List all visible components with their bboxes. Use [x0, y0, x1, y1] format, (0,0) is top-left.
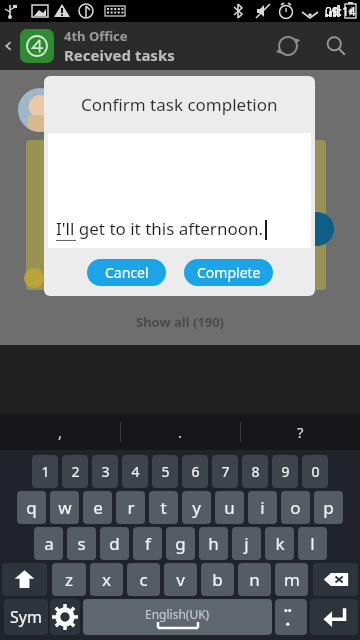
staticText: 09:14: [325, 3, 356, 19]
staticText: w: [58, 496, 72, 519]
staticText: y: [192, 496, 201, 519]
button[interactable]: n: [238, 563, 271, 596]
button[interactable]: 2: [62, 455, 88, 488]
staticText: Sym: [10, 606, 42, 628]
button[interactable]: 9: [272, 455, 298, 488]
staticText: Received tasks: [64, 45, 175, 65]
staticText: z: [65, 568, 73, 591]
staticText: b: [212, 568, 223, 591]
staticText: Show all (190): [136, 313, 225, 331]
button[interactable]: 0: [302, 455, 328, 488]
button[interactable]: v: [164, 563, 197, 596]
button[interactable]: Sym: [4, 599, 48, 635]
staticText: I'll get to it this afternoon.: [56, 217, 264, 240]
staticText: .: [178, 422, 183, 442]
button[interactable]: Enter: [310, 599, 358, 635]
staticText: 6: [191, 462, 200, 481]
staticText: r: [127, 496, 135, 519]
staticText: 1: [41, 462, 50, 481]
button[interactable]: h: [199, 527, 228, 560]
button[interactable]: 3: [92, 455, 118, 488]
button[interactable]: Refresh: [264, 22, 312, 70]
button[interactable]: English(UK): [83, 599, 272, 635]
button[interactable]: 7: [212, 455, 238, 488]
button[interactable]: b: [201, 563, 234, 596]
staticText: m: [284, 568, 300, 591]
staticText: j: [244, 532, 249, 555]
button[interactable]: Cancel: [87, 259, 166, 286]
button[interactable]: ,: [0, 414, 120, 450]
button[interactable]: u: [215, 491, 244, 524]
button[interactable]: o: [281, 491, 310, 524]
button[interactable]: Back: [0, 22, 18, 70]
button[interactable]: Shift: [2, 563, 47, 596]
staticText: Complete: [197, 263, 261, 282]
staticText: f: [145, 532, 151, 555]
staticText: o: [290, 496, 301, 519]
staticText: x: [102, 568, 111, 591]
staticText: e: [93, 496, 103, 519]
staticText: 5: [161, 462, 170, 481]
button[interactable]: t: [149, 491, 178, 524]
button[interactable]: Settings: [50, 599, 80, 635]
button[interactable]: Complete: [184, 259, 273, 286]
button[interactable]: 6: [182, 455, 208, 488]
button[interactable]: d: [100, 527, 129, 560]
button[interactable]: ?: [241, 414, 360, 450]
staticText: g: [175, 532, 186, 555]
staticText: 4: [131, 462, 140, 481]
button[interactable]: 4: [122, 455, 148, 488]
button[interactable]: m: [275, 563, 308, 596]
button[interactable]: p: [314, 491, 343, 524]
button[interactable]: 8: [242, 455, 268, 488]
button[interactable]: 1: [32, 455, 58, 488]
button[interactable]: c: [127, 563, 160, 596]
button[interactable]: k: [265, 527, 294, 560]
button[interactable]: Punctuation: [275, 599, 307, 635]
staticText: Cancel: [105, 263, 149, 282]
staticText: q: [26, 496, 37, 519]
button[interactable]: e: [83, 491, 112, 524]
button[interactable]: l: [298, 527, 327, 560]
staticText: h: [208, 532, 219, 555]
staticText: 7: [221, 462, 230, 481]
button[interactable]: Backspace: [313, 563, 358, 596]
button[interactable]: App icon: [20, 29, 54, 63]
button[interactable]: x: [90, 563, 123, 596]
staticText: t: [160, 496, 167, 519]
staticText: 3: [101, 462, 110, 481]
staticText: d: [109, 532, 120, 555]
button[interactable]: j: [232, 527, 261, 560]
staticText: n: [249, 568, 260, 591]
staticText: a: [44, 532, 54, 555]
button[interactable]: w: [50, 491, 79, 524]
staticText: ,: [58, 422, 63, 442]
staticText: 8: [251, 462, 260, 481]
staticText: 9: [281, 462, 290, 481]
staticText: 2: [71, 462, 80, 481]
staticText: i: [260, 496, 265, 519]
button[interactable]: 5: [152, 455, 178, 488]
staticText: English(UK): [145, 606, 210, 622]
staticText: s: [77, 532, 86, 555]
button[interactable]: f: [133, 527, 162, 560]
button[interactable]: Show all (190): [0, 307, 360, 337]
staticText: ?: [297, 422, 304, 442]
button[interactable]: s: [67, 527, 96, 560]
staticText: l: [310, 532, 315, 555]
button[interactable]: a: [34, 527, 63, 560]
button[interactable]: y: [182, 491, 211, 524]
button[interactable]: i: [248, 491, 277, 524]
staticText: c: [139, 568, 148, 591]
button[interactable]: g: [166, 527, 195, 560]
staticText: p: [323, 496, 334, 519]
button[interactable]: .: [121, 414, 240, 450]
button[interactable]: r: [116, 491, 145, 524]
button[interactable]: I'll get to it this afternoon.: [48, 133, 311, 248]
staticText: Confirm task completion: [81, 93, 278, 116]
button[interactable]: q: [17, 491, 46, 524]
staticText: v: [176, 568, 185, 591]
button[interactable]: Search: [312, 22, 360, 70]
button[interactable]: z: [52, 563, 86, 596]
staticText: k: [275, 532, 285, 555]
